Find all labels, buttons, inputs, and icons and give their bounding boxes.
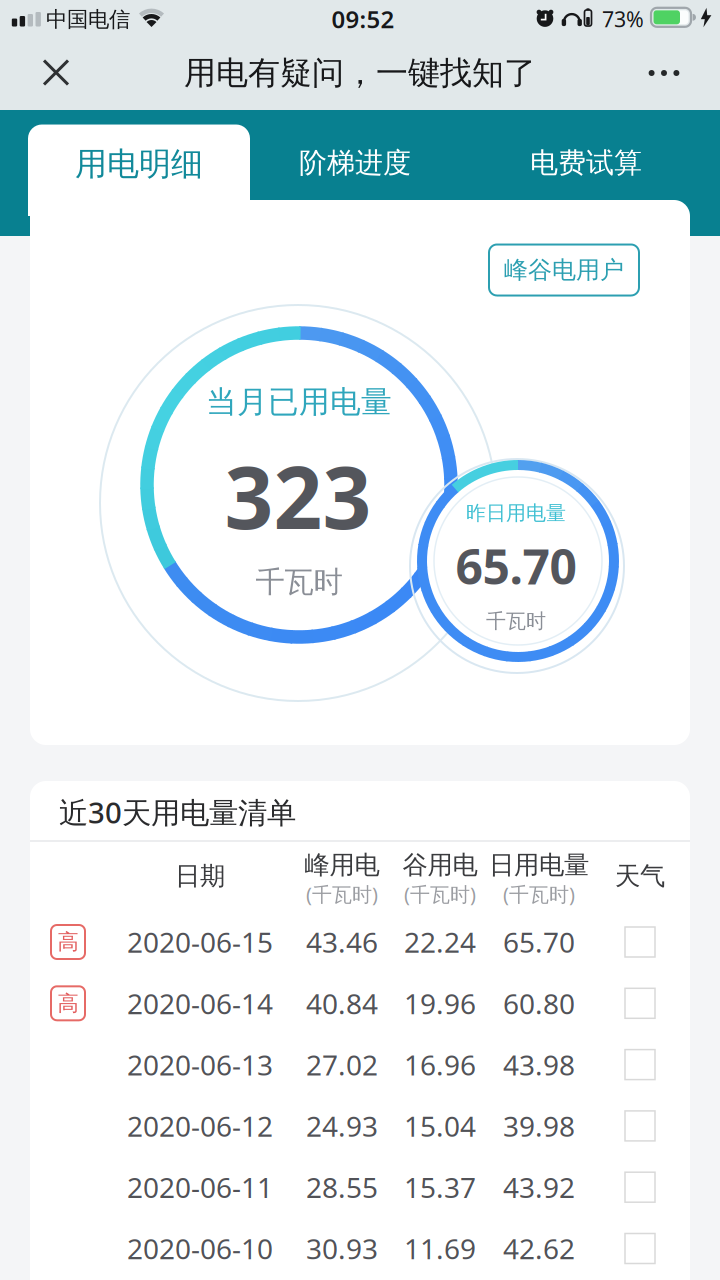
staticText: 谷用电 [402,849,477,880]
staticText: (千瓦时) [404,881,476,907]
staticText: 73% [602,5,644,33]
staticText: 42.62 [503,1230,575,1267]
staticText: 2020-06-12 [127,1107,273,1144]
staticText: 43.98 [503,1046,575,1083]
button[interactable]: Close [31,47,81,97]
button[interactable]: 电费试算 [481,123,691,203]
staticText: (千瓦时) [306,881,378,907]
button[interactable]: More [632,51,696,95]
staticText: 39.98 [503,1107,575,1144]
staticText: 65.70 [503,923,575,961]
staticText: 千瓦时 [486,609,546,633]
staticText: 天气 [615,860,665,891]
staticText: 2020-06-15 [127,923,273,961]
staticText: 2020-06-11 [127,1169,273,1206]
staticText: 用电明细 [75,144,203,184]
staticText: 65.70 [455,534,576,598]
staticText: 323 [224,439,371,553]
staticText: 16.96 [404,1046,476,1083]
staticText: 电费试算 [530,146,642,180]
staticText: 09:52 [331,3,394,35]
staticText: 峰用电 [304,849,379,880]
staticText: 19.96 [404,985,476,1022]
staticText: (千瓦时) [503,881,575,907]
staticText: 当月已用电量 [206,383,392,421]
staticText: 日用电量 [489,849,589,880]
button[interactable]: 用电明细 [29,124,249,204]
staticText: 峰谷电用户 [504,255,624,285]
staticText: 15.37 [404,1169,476,1206]
staticText: 27.02 [306,1046,378,1083]
staticText: 近30天用电量清单 [59,792,296,831]
button[interactable]: 峰谷电用户 [489,244,639,295]
staticText: 中国电信 [46,6,130,33]
staticText: 43.46 [306,923,378,961]
staticText: 22.24 [404,923,476,961]
staticText: 40.84 [306,985,378,1022]
staticText: 昨日用电量 [466,501,566,525]
staticText: 阶梯进度 [299,146,411,180]
staticText: 43.92 [503,1169,575,1206]
staticText: 2020-06-13 [127,1046,273,1083]
staticText: 千瓦时 [255,564,342,600]
staticText: 15.04 [404,1107,476,1144]
button[interactable]: 阶梯进度 [250,123,460,203]
staticText: 日期 [175,860,225,891]
staticText: 60.80 [503,985,575,1022]
staticText: 11.69 [404,1230,476,1267]
staticText: 24.93 [306,1107,378,1144]
staticText: 高 [57,990,78,1016]
staticText: 高 [57,929,78,955]
staticText: 用电有疑问，一键找知了 [184,53,536,93]
staticText: 28.55 [306,1169,378,1206]
staticText: 2020-06-10 [127,1230,273,1267]
staticText: 2020-06-14 [127,985,273,1022]
staticText: 30.93 [306,1230,378,1267]
